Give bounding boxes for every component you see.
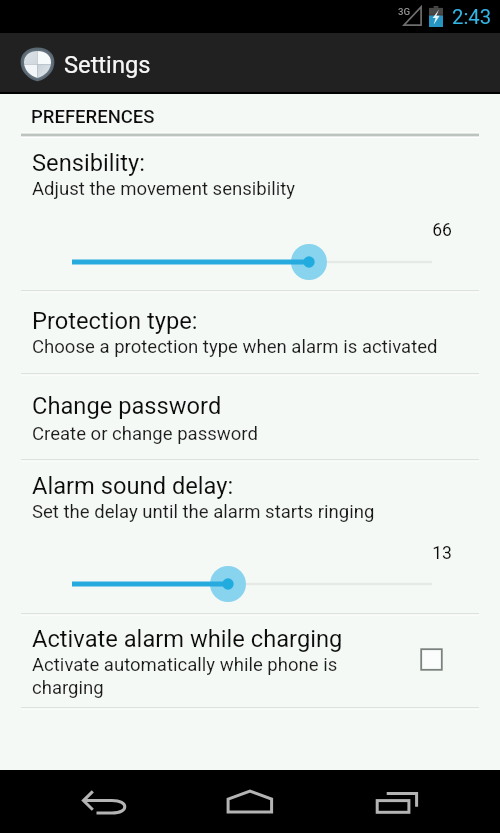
staticText: Activate alarm while charging: [32, 625, 343, 653]
button[interactable]: Back: [30, 770, 178, 833]
staticText: Adjust the movement sensibility: [32, 178, 296, 200]
staticText: 3G: [398, 6, 411, 17]
button[interactable]: Recent apps: [322, 770, 470, 833]
staticText: Choose a protection type when alarm is a…: [32, 336, 438, 358]
button[interactable]: Home: [178, 770, 322, 833]
staticText: Activate automatically while phone is: [32, 654, 338, 676]
staticText: 66: [0, 220, 452, 241]
button[interactable]: Alarm sound delay:: [0, 466, 500, 524]
button[interactable]: Activate alarm while charging: [0, 619, 500, 700]
staticText: Alarm sound delay:: [32, 472, 234, 500]
staticText: Change password: [32, 392, 222, 420]
button[interactable]: [0, 564, 500, 604]
staticText: Sensibility:: [32, 149, 145, 177]
staticText: 2:43: [452, 5, 492, 29]
staticText: PREFERENCES: [31, 106, 155, 128]
staticText: charging: [32, 677, 104, 699]
staticText: Protection type:: [32, 307, 198, 335]
button[interactable]: Protection type:: [0, 301, 500, 359]
staticText: Create or change password: [32, 423, 258, 445]
button[interactable]: Sensibility:: [0, 143, 500, 201]
button[interactable]: Activate alarm while charging, unchecked: [420, 648, 443, 671]
button[interactable]: [0, 33, 500, 92]
staticText: 13: [0, 543, 452, 564]
button[interactable]: Change password: [0, 386, 500, 446]
button[interactable]: [0, 242, 500, 282]
staticText: Set the delay until the alarm starts rin…: [32, 501, 375, 523]
staticText: Settings: [64, 51, 151, 79]
